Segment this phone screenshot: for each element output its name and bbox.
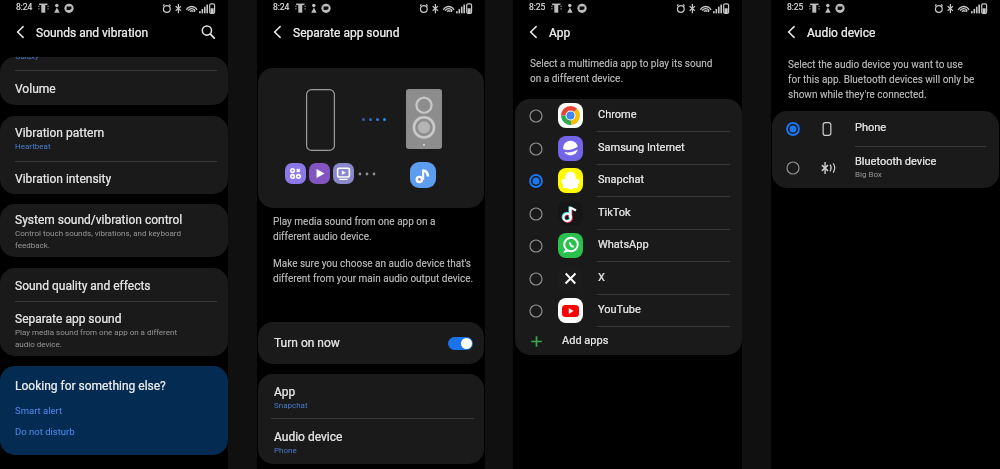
button[interactable]: Navigate up (525, 24, 541, 40)
staticText: Select a multimedia app to play its soun… (530, 58, 713, 84)
button[interactable]: Turn on now toggle (448, 337, 473, 350)
button[interactable]: Navigate up (269, 24, 285, 40)
button[interactable]: YouTube (515, 294, 742, 327)
staticText: Heartbeat (15, 142, 51, 151)
staticText: Bluetooth device (855, 155, 937, 168)
button[interactable]: Smart alert (15, 402, 145, 422)
button[interactable]: Volume (0, 70, 228, 105)
staticText: TikTok (598, 206, 631, 219)
button[interactable]: Audio device (258, 419, 484, 464)
staticText: Smart alert (15, 405, 63, 416)
button[interactable]: Phone (772, 111, 999, 146)
staticText: YouTube (598, 303, 641, 316)
staticText: Volume (15, 82, 56, 96)
button[interactable]: WhatsApp (515, 229, 742, 262)
button[interactable]: TikTok (515, 197, 742, 230)
staticText: Snapchat (598, 173, 645, 186)
staticText: 8:25 (787, 2, 804, 12)
staticText: Chrome (598, 108, 637, 121)
staticText: Separate app sound (15, 312, 122, 326)
staticText: Do not disturb (15, 426, 75, 437)
button[interactable]: Vibration pattern (0, 116, 228, 161)
button[interactable]: Search (199, 23, 217, 41)
staticText: Play media sound from one app on a diffe… (273, 216, 436, 242)
staticText: Snapchat (274, 401, 308, 410)
staticText: 8:24 (273, 2, 290, 12)
staticText: Add apps (562, 334, 609, 347)
button[interactable]: System sound/vibration control (0, 204, 228, 257)
button[interactable]: App (258, 374, 484, 418)
button[interactable]: Samsung Internet (515, 132, 742, 165)
staticText: App (549, 26, 571, 40)
button[interactable]: Navigate up (783, 24, 799, 40)
staticText: Galaxy (15, 57, 39, 61)
staticText: System sound/vibration control (15, 213, 183, 227)
staticText: Control touch sounds, vibrations, and ke… (15, 229, 181, 250)
staticText: Make sure you choose an audio device tha… (273, 258, 474, 284)
button[interactable]: Navigate up (12, 24, 28, 40)
button[interactable]: Separate app sound (0, 302, 228, 356)
staticText: Sound quality and effects (15, 279, 151, 293)
button[interactable]: Sound quality and effects (0, 268, 228, 301)
staticText: Looking for something else? (15, 379, 166, 393)
staticText: Big Box (855, 170, 882, 179)
staticText: WhatsApp (598, 238, 649, 251)
button[interactable]: Chrome (515, 99, 742, 132)
staticText: Turn on now (274, 336, 340, 350)
staticText: Select the audio device you want to use … (788, 59, 975, 100)
staticText: Vibration intensity (15, 172, 112, 186)
staticText: 8:24 (16, 2, 33, 12)
staticText: Phone (855, 121, 887, 134)
button[interactable]: Snapchat (515, 164, 742, 197)
staticText: X (598, 271, 605, 284)
button[interactable]: Add apps (515, 327, 742, 355)
staticText: Separate app sound (293, 26, 400, 40)
button[interactable]: X (515, 262, 742, 295)
button[interactable]: Turn on now (258, 322, 484, 364)
staticText: Phone (274, 446, 297, 455)
staticText: Audio device (807, 26, 876, 40)
button[interactable]: Bluetooth device (772, 147, 999, 188)
button[interactable]: Do not disturb (15, 423, 145, 443)
staticText: App (274, 385, 296, 399)
staticText: Vibration pattern (15, 126, 105, 140)
staticText: Sounds and vibration (36, 26, 149, 40)
staticText: Play media sound from one app on a diffe… (15, 328, 178, 349)
staticText: Samsung Internet (598, 141, 685, 154)
staticText: Audio device (274, 430, 343, 444)
staticText: 8:25 (529, 2, 546, 12)
button[interactable]: Vibration intensity (0, 162, 228, 194)
